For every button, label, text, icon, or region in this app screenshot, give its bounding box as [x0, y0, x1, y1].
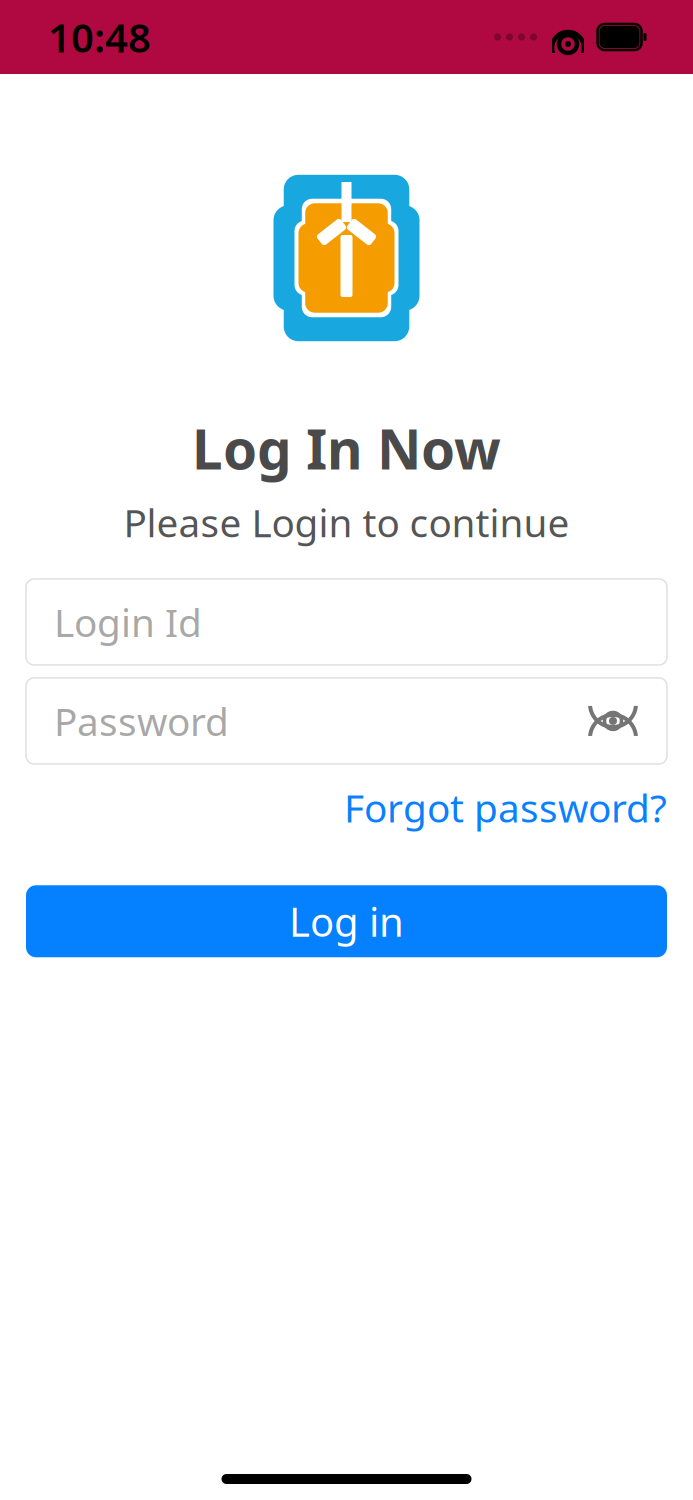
- staticText: Password: [54, 695, 229, 747]
- staticText: Please Login to continue: [123, 497, 569, 548]
- staticText: Log in: [289, 895, 404, 948]
- button[interactable]: Forgot password?: [344, 774, 667, 841]
- staticText: 10:48: [48, 10, 151, 63]
- button[interactable]: Log in: [26, 885, 667, 957]
- button[interactable]: Show password: [581, 692, 645, 750]
- staticText: Login Id: [54, 596, 202, 648]
- staticText: Forgot password?: [344, 782, 667, 833]
- staticText: Log In Now: [192, 412, 501, 485]
